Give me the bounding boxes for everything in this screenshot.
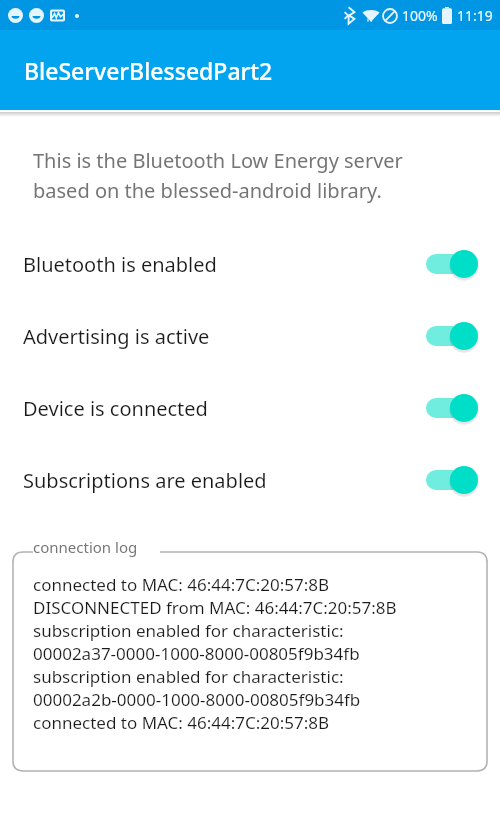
button[interactable]: Toggle <box>426 319 478 353</box>
staticText: subscription enabled for characteristic: <box>33 665 344 688</box>
staticText: Advertising is active <box>23 323 210 350</box>
button[interactable]: Bluetooth is enabled <box>0 228 500 300</box>
staticText: DISCONNECTED from MAC: 46:44:7C:20:57:8B <box>33 596 397 619</box>
button[interactable]: Toggle <box>426 247 478 281</box>
staticText: connection log <box>33 537 138 557</box>
staticText: connected to MAC: 46:44:7C:20:57:8B <box>33 711 330 734</box>
staticText: 00002a2b-0000-1000-8000-00805f9b34fb <box>33 688 361 711</box>
staticText: 00002a37-0000-1000-8000-00805f9b34fb <box>33 642 360 665</box>
staticText: subscription enabled for characteristic: <box>33 619 344 642</box>
button[interactable]: Subscriptions are enabled <box>0 444 500 516</box>
button[interactable]: Device is connected <box>0 372 500 444</box>
staticText: Subscriptions are enabled <box>23 467 267 494</box>
staticText: This is the Bluetooth Low Energy server … <box>33 147 450 204</box>
button[interactable]: Toggle <box>426 391 478 425</box>
button[interactable]: Advertising is active <box>0 300 500 372</box>
button[interactable]: connection log <box>13 535 487 771</box>
staticText: 11:19 <box>457 6 493 25</box>
staticText: Device is connected <box>23 395 208 422</box>
staticText: Bluetooth is enabled <box>23 251 217 278</box>
staticText: connected to MAC: 46:44:7C:20:57:8B <box>33 573 330 596</box>
button[interactable]: Toggle <box>426 463 478 497</box>
staticText: 100% <box>402 6 438 25</box>
staticText: BleServerBlessedPart2 <box>24 55 273 86</box>
